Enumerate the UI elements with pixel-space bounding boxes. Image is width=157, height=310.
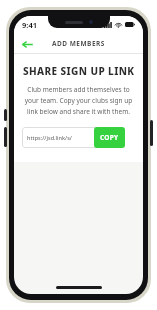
staticText: https://jsd.link/s/25083dc08375862a9f xyxy=(27,134,99,141)
button[interactable]: Back xyxy=(17,35,37,53)
button[interactable]: https://jsd.link/s/25083dc08375862a9f xyxy=(22,127,104,148)
staticText: 9:41 xyxy=(22,20,37,30)
button[interactable]: COPY xyxy=(94,127,125,148)
staticText: SHARE SIGN UP LINK xyxy=(23,64,135,78)
staticText: Club members add themselves to your team… xyxy=(22,85,135,116)
staticText: COPY xyxy=(100,133,119,142)
staticText: ADD MEMBERS xyxy=(52,39,105,48)
